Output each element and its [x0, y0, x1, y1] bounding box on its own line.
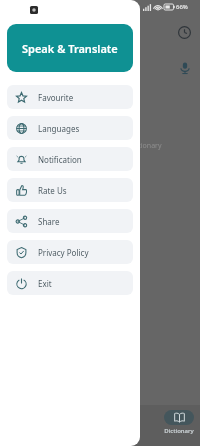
button[interactable]: Dictionary [158, 410, 200, 435]
button[interactable]: Privacy Policy [7, 240, 133, 264]
button[interactable]: Rate Us [7, 178, 133, 202]
staticText: Rate Us [38, 185, 67, 196]
button[interactable]: Exit [7, 271, 133, 295]
button[interactable]: Notification [7, 147, 133, 171]
button[interactable]: Translate [128, 413, 150, 437]
button[interactable]: Favourite [7, 85, 133, 109]
staticText: Exit [38, 278, 52, 289]
button[interactable]: Share [7, 209, 133, 233]
staticText: Share [38, 216, 60, 227]
staticText: Favourite [38, 92, 74, 103]
button[interactable]: History [176, 24, 193, 41]
button[interactable]: Languages [7, 116, 133, 140]
staticText: Languages [38, 123, 80, 134]
staticText: Notification [38, 154, 82, 165]
staticText: Privacy Policy [38, 247, 89, 258]
staticText: Dictionary [164, 427, 194, 435]
staticText: Dictionary [128, 141, 162, 151]
staticText: 66% [176, 3, 188, 11]
staticText: Speak & Translate [22, 41, 118, 56]
button[interactable]: Speak & Translate [7, 24, 133, 72]
button[interactable]: Microphone [177, 60, 193, 76]
